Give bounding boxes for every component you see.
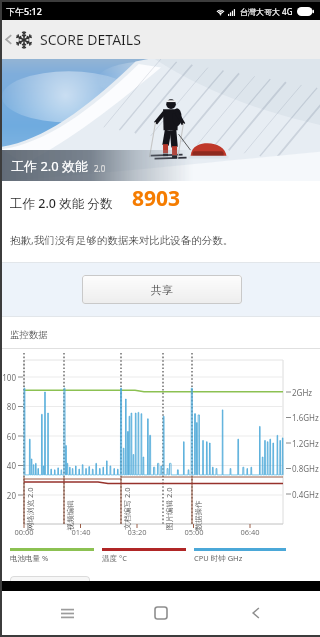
button[interactable]: 共享 [82, 275, 242, 304]
staticText: 60 [0, 431, 16, 442]
staticText: 2GHz [292, 387, 313, 398]
staticText: 共享 [151, 283, 173, 297]
staticText: 8903 [132, 184, 181, 213]
staticText: 数据操作 [193, 478, 202, 530]
staticText: 监控数据 [10, 329, 48, 341]
staticText: 40 [0, 460, 16, 471]
staticText: 06:40 [235, 527, 265, 537]
button[interactable]: Back [226, 591, 286, 635]
staticText: 工作 2.0 效能 [11, 157, 89, 175]
button[interactable]: Home [131, 591, 191, 635]
staticText: 温度 °C [102, 553, 127, 563]
staticText: 下午5:12 [6, 5, 42, 17]
staticText: 05:00 [179, 527, 209, 537]
staticText: 0.8GHz [292, 463, 319, 474]
staticText: 03:20 [122, 527, 152, 537]
staticText: 图片编辑 2.0 [164, 478, 174, 530]
staticText: 80 [0, 401, 16, 412]
staticText: SCORE DETAILS [40, 30, 141, 49]
button[interactable]: Back [2, 20, 15, 59]
staticText: 0.4GHz [292, 489, 319, 500]
staticText: 20 [0, 490, 16, 501]
staticText: 100 [0, 372, 16, 383]
staticText: 抱歉,我们没有足够的数据来对比此设备的分数。 [10, 233, 234, 247]
staticText: 1.6GHz [292, 412, 319, 423]
staticText: 电池电量 % [10, 553, 49, 563]
staticText: 工作 2.0 效能 分数 [10, 195, 113, 212]
staticText: 1.2GHz [292, 438, 319, 449]
staticText: 00:00 [9, 527, 39, 537]
staticText: 01:40 [66, 527, 96, 537]
staticText: 网络浏览 2.0 [25, 478, 35, 530]
staticText: 文档编写 2.0 [122, 478, 132, 530]
button[interactable]: Recents [37, 591, 97, 635]
staticText: 2.0 [94, 163, 106, 174]
staticText: 台灣大哥大 4G [240, 6, 293, 17]
staticText: CPU 时钟 GHz [194, 553, 243, 563]
staticText: 视频编辑 [65, 478, 74, 530]
